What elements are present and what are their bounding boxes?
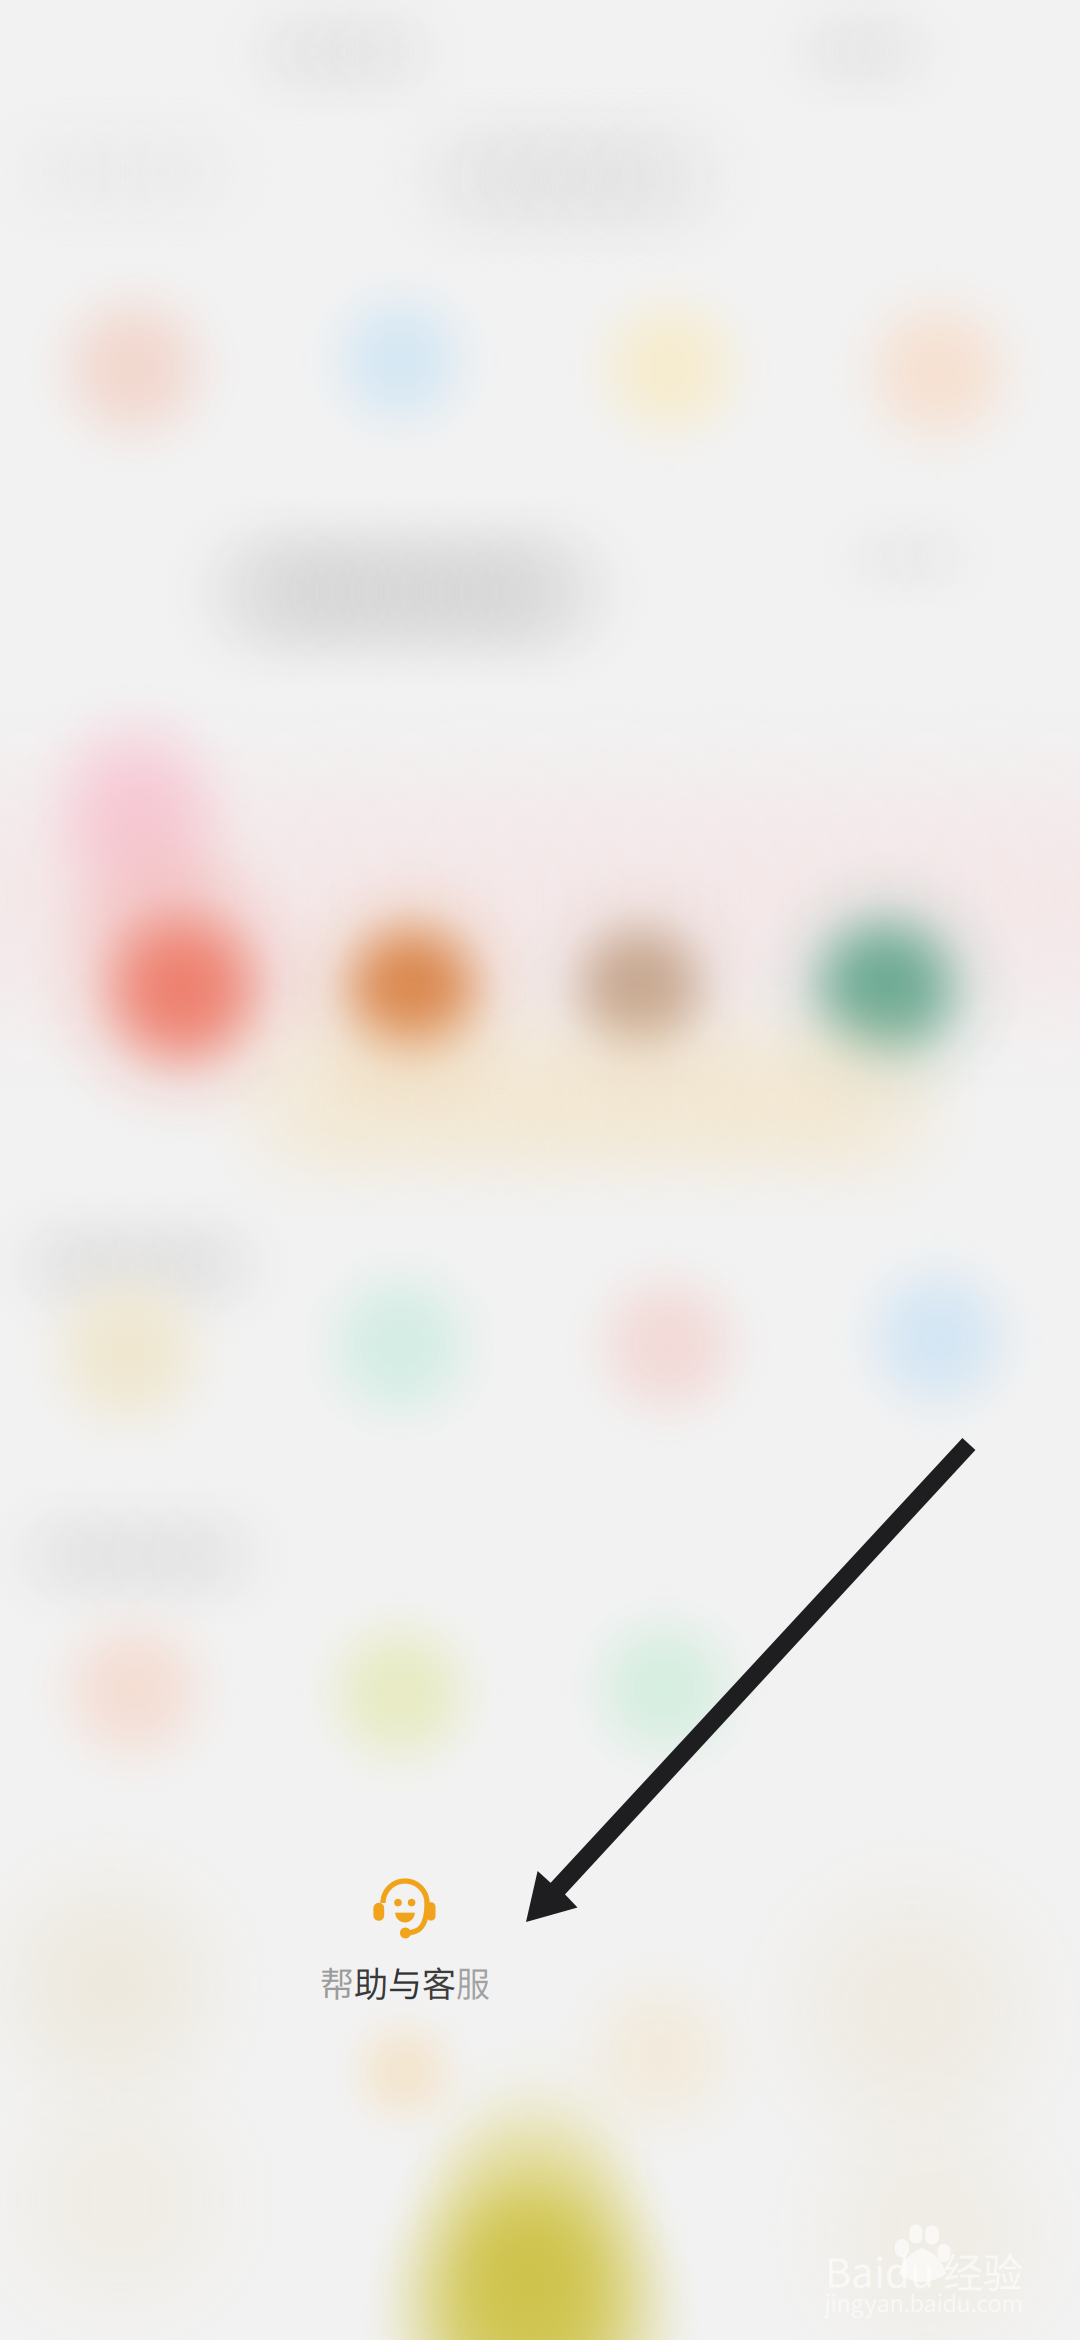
staticText: 与 — [388, 1957, 422, 2007]
button[interactable]: 帮 — [271, 1859, 539, 2029]
staticText: 服 — [456, 1957, 490, 2007]
staticText: 客 — [422, 1957, 456, 2007]
staticText: 帮 — [320, 1957, 354, 2007]
staticText: Baidu 经验 — [825, 2241, 1023, 2299]
staticText: jingyan.baidu.com — [824, 2285, 1023, 2319]
staticText: 助 — [354, 1957, 388, 2007]
